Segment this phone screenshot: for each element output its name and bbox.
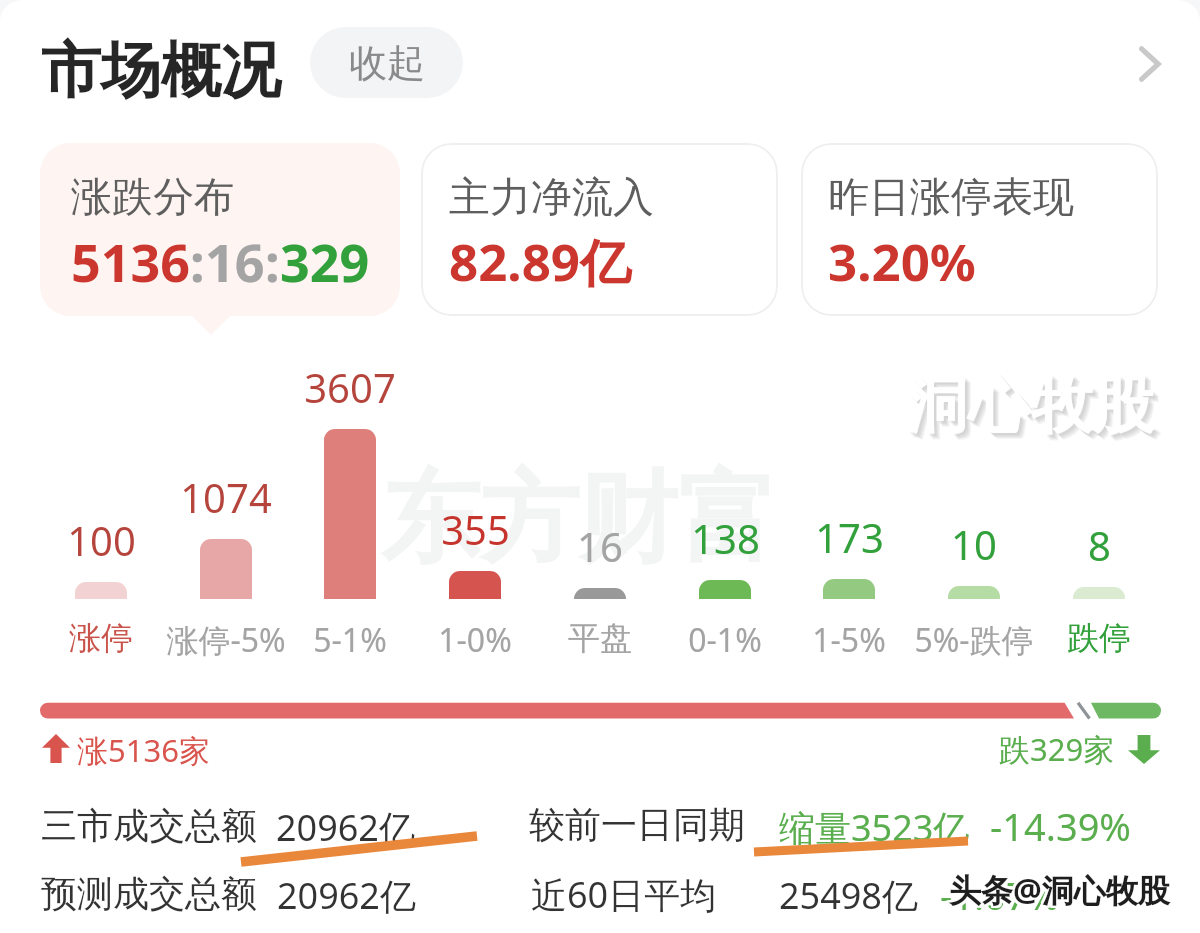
staticText: 20962亿 — [277, 871, 416, 920]
button[interactable]: 5%-跌停 10 — [916, 350, 1032, 655]
staticText: 涨跌分布 — [71, 172, 235, 224]
staticText: -14.39% — [990, 800, 1131, 852]
staticText: 头条@洞心牧股 — [949, 870, 1170, 914]
staticText: 100 — [67, 513, 136, 567]
staticText: 涨5136家 — [77, 729, 210, 771]
staticText: 173 — [815, 510, 884, 564]
staticText: 5-1% — [313, 618, 387, 662]
staticText: 平盘 — [568, 618, 632, 658]
staticText: 洞心牧股 — [908, 368, 1156, 446]
staticText: 洞心牧股 — [909, 369, 1157, 447]
staticText: 1074 — [180, 470, 272, 524]
staticText: 5%-跌停 — [914, 618, 1034, 662]
staticText: 头条@洞心牧股 — [947, 868, 1168, 912]
button[interactable]: Open market overview — [1109, 24, 1189, 104]
staticText: 16 — [205, 226, 265, 297]
staticText: 洞心牧股 — [912, 372, 1160, 450]
button[interactable]: 1-0% 355 — [417, 350, 533, 655]
staticText: 东方财富 — [381, 457, 777, 582]
button[interactable]: 收起 — [310, 27, 463, 98]
staticText: 涨停-5% — [166, 618, 286, 662]
staticText: -1.07% — [940, 869, 1060, 921]
button[interactable]: 5-1% 3607 — [292, 350, 408, 655]
staticText: 3607 — [304, 360, 396, 414]
button[interactable]: 主力净流入 — [421, 143, 778, 316]
staticText: 主力净流入 — [449, 172, 654, 224]
staticText: 5136 — [71, 226, 190, 297]
staticText: 10 — [951, 517, 997, 571]
staticText: 0-1% — [688, 618, 762, 662]
staticText: 市场概况 — [41, 33, 281, 109]
staticText: 跌329家 — [999, 728, 1115, 770]
staticText: 329 — [280, 226, 370, 297]
staticText: 3.20% — [828, 226, 976, 295]
staticText: 头条@洞心牧股 — [947, 866, 1168, 910]
button[interactable]: 1-5% 173 — [791, 350, 907, 655]
staticText: 头条@洞心牧股 — [951, 868, 1172, 912]
staticText: 355 — [441, 502, 510, 556]
button[interactable]: 0-1% 138 — [667, 350, 783, 655]
staticText: 138 — [691, 511, 760, 565]
button[interactable]: 跌停 8 — [1041, 350, 1157, 655]
staticText: 1-5% — [812, 618, 886, 662]
staticText: 头条@洞心牧股 — [951, 870, 1172, 914]
staticText: : — [265, 226, 280, 297]
staticText: 25498亿 — [779, 871, 918, 920]
staticText: 洞心牧股 — [910, 370, 1158, 448]
staticText: 洞心牧股 — [906, 366, 1154, 444]
button[interactable]: 涨跌分布 — [40, 143, 400, 316]
staticText: 洞心牧股 — [911, 371, 1159, 449]
staticText: 近60日平均 — [531, 870, 717, 919]
staticText: 头条@洞心牧股 — [951, 866, 1172, 910]
staticText: 较前一日同期 — [529, 802, 745, 847]
staticText: 8 — [1088, 518, 1111, 572]
staticText: 16 — [577, 519, 623, 573]
staticText: 缩量3523亿 — [779, 803, 970, 852]
staticText: 20962亿 — [276, 803, 415, 852]
button[interactable]: 涨停 100 — [43, 350, 159, 655]
staticText: 预测成交总额 — [41, 871, 257, 916]
staticText: 收起 — [349, 39, 425, 87]
staticText: 三市成交总额 — [41, 803, 257, 848]
staticText: : — [190, 226, 205, 297]
button[interactable]: 平盘 16 — [542, 350, 658, 655]
staticText: 头条@洞心牧股 — [949, 866, 1170, 910]
staticText: 1-0% — [438, 618, 512, 662]
staticText: 涨停 — [69, 618, 133, 658]
button[interactable]: 涨停-5% 1074 — [168, 350, 284, 655]
staticText: 昨日涨停表现 — [828, 172, 1074, 224]
button[interactable]: 昨日涨停表现 — [801, 143, 1158, 316]
staticText: 跌停 — [1067, 618, 1131, 658]
staticText: 头条@洞心牧股 — [947, 870, 1168, 914]
staticText: 82.89亿 — [449, 226, 632, 296]
staticText: 头条@洞心牧股 — [949, 868, 1170, 912]
